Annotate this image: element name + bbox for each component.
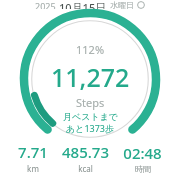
staticText: km bbox=[27, 163, 39, 174]
staticText: 11,272 bbox=[51, 60, 130, 94]
button[interactable]: 02:48 bbox=[123, 143, 162, 174]
staticText: 月ベストまで bbox=[63, 111, 119, 122]
button[interactable]: 485.73 bbox=[62, 142, 109, 174]
staticText: 112% bbox=[76, 42, 105, 57]
button[interactable]: Step progress 112 percent bbox=[0, 0, 180, 180]
staticText: 7.71 bbox=[18, 142, 48, 162]
staticText: kcal bbox=[78, 163, 93, 174]
button[interactable]: 112% bbox=[51, 42, 130, 134]
staticText: Steps bbox=[76, 95, 105, 110]
staticText: 485.73 bbox=[62, 142, 109, 162]
staticText: 2025 bbox=[35, 0, 56, 9]
button[interactable]: 2025 bbox=[0, 0, 180, 9]
staticText: あと1373歩 bbox=[66, 122, 115, 134]
staticText: 時間 bbox=[135, 164, 151, 174]
staticText: 10月15日 bbox=[59, 0, 107, 9]
staticText: 水曜日 bbox=[110, 0, 134, 9]
button[interactable]: 7.71 bbox=[18, 142, 48, 174]
other: Weather bbox=[137, 1, 145, 9]
staticText: 02:48 bbox=[123, 143, 162, 163]
